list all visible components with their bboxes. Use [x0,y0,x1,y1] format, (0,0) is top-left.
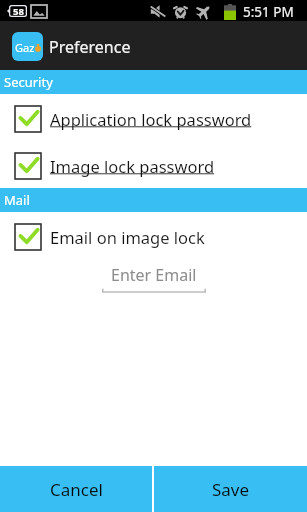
staticText: Save [212,478,250,501]
button[interactable]: Checked [0,94,307,141]
staticText: 58 [13,5,24,17]
other: App icon [12,32,43,61]
staticText: Preference [49,36,131,58]
staticText: Email on image lock [50,226,205,248]
button[interactable]: Cancel [0,466,152,512]
other: Checked [15,153,41,179]
staticText: Image lock password [50,155,215,177]
button[interactable]: Checked [0,141,307,188]
staticText: Mail [4,191,30,209]
staticText: Enter Email [111,264,197,286]
staticText: Cancel [50,478,103,501]
other: Checked [15,224,41,250]
staticText: Application lock password [50,108,252,130]
other: Checked [15,106,41,132]
staticText: 5:51 PM [243,3,294,21]
staticText: Gaz [15,40,35,55]
button[interactable]: Checked [0,212,307,259]
staticText: Security [4,73,53,91]
button[interactable]: Save [154,466,307,512]
button[interactable]: Enter Email [102,259,206,293]
